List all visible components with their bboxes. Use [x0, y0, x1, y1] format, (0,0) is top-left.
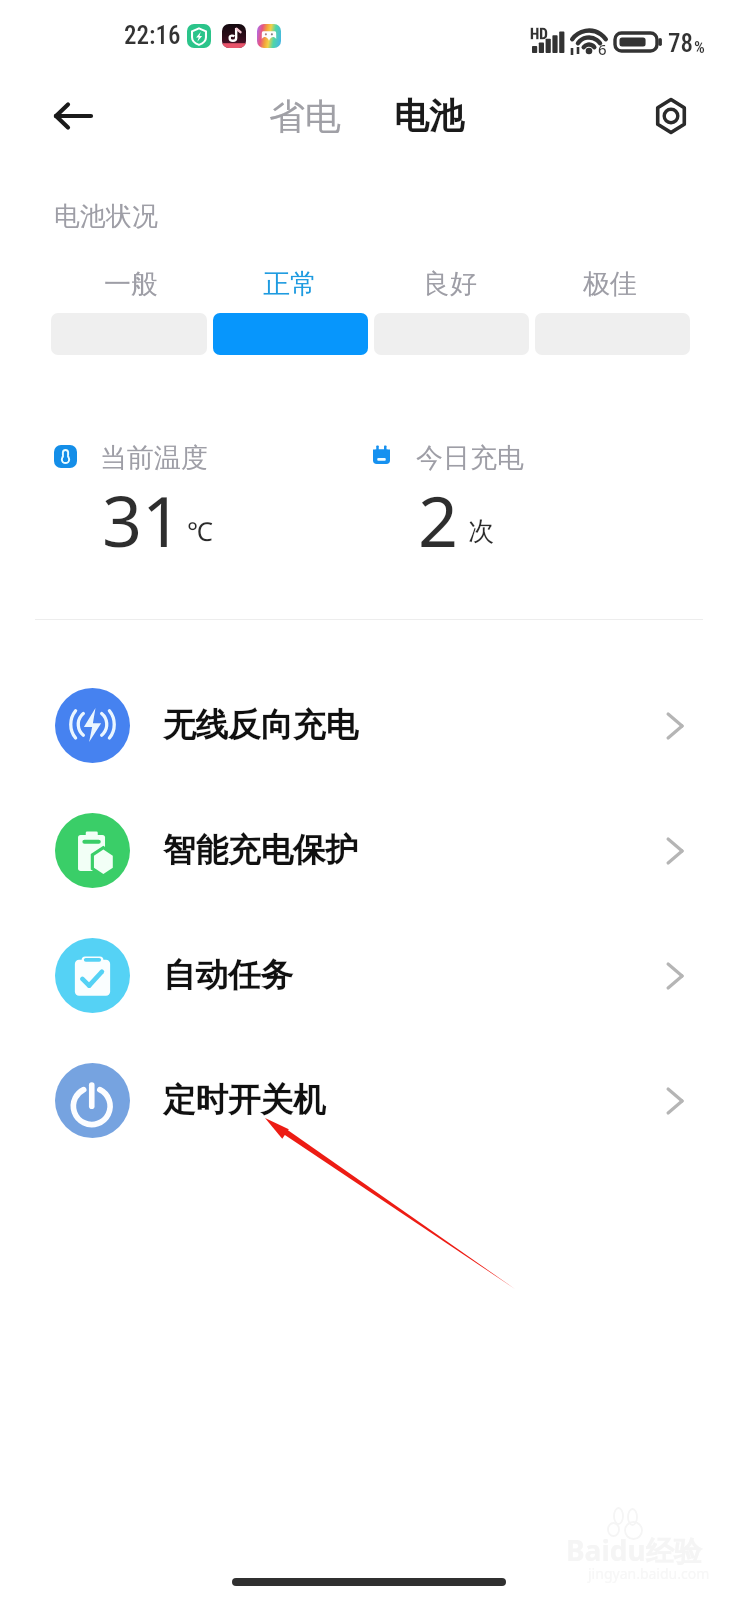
staticText: 电池: [394, 94, 464, 138]
button[interactable]: 无线反向充电: [0, 663, 738, 788]
staticText: 省电: [269, 94, 341, 139]
staticText: 极佳: [583, 267, 637, 301]
staticText: 次: [468, 515, 494, 548]
staticText: 6: [598, 39, 607, 59]
staticText: %: [694, 37, 705, 57]
staticText: 良好: [423, 267, 477, 301]
button[interactable]: Back: [40, 88, 108, 144]
staticText: 自动任务: [163, 955, 293, 996]
staticText: 一般: [104, 267, 158, 301]
staticText: 78: [668, 29, 694, 58]
button[interactable]: Settings: [646, 92, 696, 142]
staticText: 今日充电: [416, 441, 524, 475]
staticText: 智能充电保护: [163, 830, 358, 871]
staticText: 31: [102, 472, 183, 567]
staticText: 正常: [263, 267, 317, 301]
button[interactable]: 电池: [380, 84, 478, 148]
button[interactable]: 自动任务: [0, 913, 738, 1038]
staticText: 2: [418, 472, 459, 567]
button[interactable]: 定时开关机: [0, 1038, 738, 1163]
staticText: 电池状况: [54, 200, 158, 233]
staticText: 当前温度: [100, 441, 208, 475]
staticText: 定时开关机: [163, 1080, 326, 1121]
staticText: Baidu经验: [566, 1531, 702, 1569]
staticText: 22:16: [124, 21, 181, 50]
staticText: 无线反向充电: [163, 705, 358, 746]
staticText: HD: [530, 25, 548, 43]
button[interactable]: 智能充电保护: [0, 788, 738, 913]
button[interactable]: 省电: [255, 84, 355, 149]
staticText: ℃: [187, 513, 213, 548]
